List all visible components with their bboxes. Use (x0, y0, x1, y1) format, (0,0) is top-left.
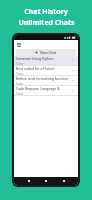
button[interactable]: Best suited for a Flutter (14, 66, 78, 76)
button[interactable]: More options (71, 88, 76, 93)
staticText: Code Request: Language & Purpose? (16, 86, 71, 91)
staticText: Unlimited Chats (18, 18, 75, 28)
button[interactable]: Menu (16, 42, 22, 48)
staticText: Best suited for a Flutter (16, 66, 55, 71)
button[interactable]: Code Request: Language & Purpose? (14, 86, 78, 96)
button[interactable]: More options (71, 58, 76, 63)
button[interactable]: Recents (61, 178, 67, 184)
staticText: New Chat (40, 50, 57, 55)
button[interactable]: Back (26, 178, 32, 184)
button[interactable]: New Chat (16, 49, 76, 56)
button[interactable]: Before code formatting function (14, 76, 78, 86)
staticText: Before code formatting function (16, 76, 69, 81)
button[interactable]: More options (71, 68, 76, 73)
staticText: Today (16, 62, 24, 65)
staticText: Today (16, 72, 24, 75)
staticText: Generate Using Python (16, 56, 54, 61)
staticText: Today (16, 82, 24, 85)
button[interactable]: Generate Using Python (14, 56, 78, 66)
staticText: Today (16, 92, 24, 95)
staticText: Chat History (24, 7, 68, 17)
button[interactable]: More options (71, 78, 76, 83)
button[interactable]: Home (43, 178, 49, 184)
